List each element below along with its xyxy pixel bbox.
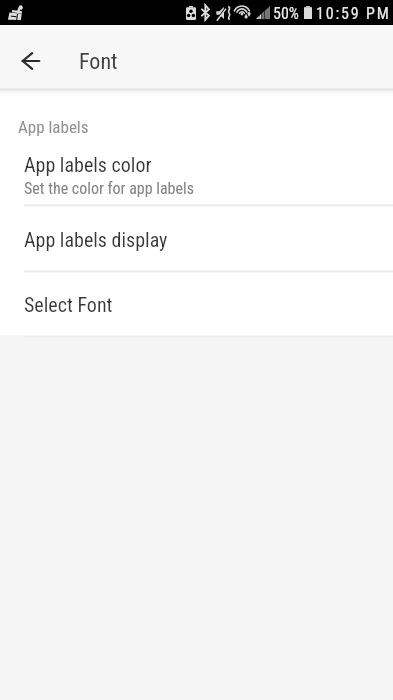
staticText: 50% bbox=[273, 4, 299, 23]
staticText: Set the color for app labels bbox=[24, 179, 194, 198]
button[interactable]: App labels color bbox=[0, 141, 393, 204]
staticText: App labels display bbox=[24, 228, 168, 251]
staticText: Font bbox=[79, 49, 118, 75]
button[interactable]: App labels display bbox=[0, 207, 393, 270]
staticText: App labels bbox=[18, 117, 89, 137]
staticText: 10:59 PM bbox=[316, 4, 391, 23]
staticText: Select Font bbox=[24, 293, 113, 316]
button[interactable]: Back bbox=[12, 42, 50, 80]
staticText: App labels color bbox=[24, 153, 152, 176]
button[interactable]: Select Font bbox=[0, 273, 393, 335]
